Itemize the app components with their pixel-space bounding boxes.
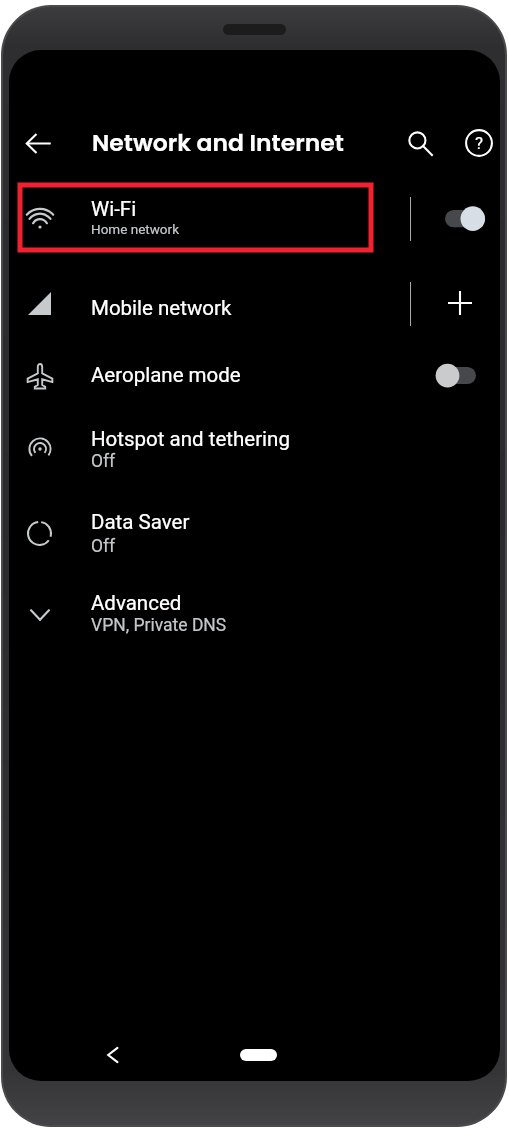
- button[interactable]: Wi-Fi, Home network: [9, 182, 367, 252]
- button[interactable]: Advanced, VPN, Private DNS: [9, 583, 500, 663]
- staticText: Off: [91, 536, 116, 557]
- staticText: Wi-Fi: [91, 197, 137, 221]
- staticText: Hotspot and tethering: [91, 427, 290, 451]
- button[interactable]: Mobile network: [9, 268, 367, 338]
- staticText: Data Saver: [91, 510, 190, 534]
- button[interactable]: Search: [396, 119, 444, 167]
- button[interactable]: Help: [455, 119, 500, 167]
- button[interactable]: Back: [14, 119, 62, 167]
- staticText: ?: [475, 133, 484, 153]
- button[interactable]: Back: [97, 1039, 129, 1071]
- button[interactable]: Hotspot and tethering, Off: [9, 416, 500, 496]
- staticText: VPN, Private DNS: [91, 615, 227, 636]
- button[interactable]: Aeroplane mode: [9, 342, 500, 412]
- staticText: Aeroplane mode: [91, 363, 241, 387]
- button[interactable]: Add mobile network: [379, 268, 500, 338]
- button[interactable]: Wi-Fi on: [379, 182, 500, 252]
- staticText: Home network: [91, 221, 179, 237]
- staticText: Network and Internet: [92, 126, 344, 159]
- staticText: Mobile network: [91, 296, 232, 320]
- staticText: Advanced: [91, 591, 182, 615]
- button[interactable]: Data Saver, Off: [9, 500, 500, 580]
- button[interactable]: Home: [240, 1049, 277, 1061]
- staticText: Off: [91, 451, 116, 472]
